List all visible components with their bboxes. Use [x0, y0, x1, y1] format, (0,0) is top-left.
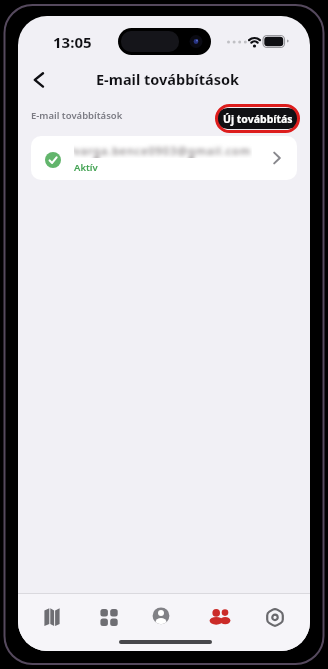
- staticText: 13:05: [53, 32, 92, 49]
- button[interactable]: [149, 604, 173, 628]
- button[interactable]: varga.bence0903@gmail.com: [31, 136, 297, 180]
- button[interactable]: [97, 605, 121, 629]
- staticText: Új továbbítás: [223, 112, 293, 126]
- button[interactable]: [40, 605, 64, 629]
- button[interactable]: [208, 605, 232, 629]
- button[interactable]: [263, 605, 287, 629]
- staticText: E-mail továbbítások: [31, 109, 123, 122]
- button[interactable]: [25, 67, 51, 93]
- staticText: Aktív: [74, 161, 98, 174]
- staticText: varga.bence0903@gmail.com: [74, 143, 252, 158]
- button[interactable]: Új továbbítás: [215, 104, 300, 133]
- staticText: E-mail továbbítások: [96, 69, 240, 87]
